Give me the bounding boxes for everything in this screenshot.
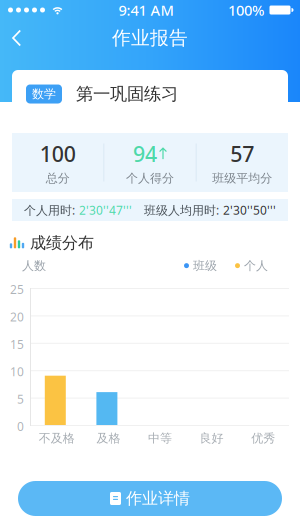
- staticText: 5: [17, 391, 24, 407]
- staticText: 作业报告: [112, 26, 188, 49]
- staticText: 20: [10, 309, 24, 325]
- staticText: 良好: [200, 431, 224, 446]
- staticText: 作业详情: [126, 489, 190, 508]
- staticText: 成绩分布: [30, 233, 94, 253]
- staticText: 94: [133, 139, 157, 168]
- staticText: 2'30''50''': [223, 202, 276, 218]
- staticText: 2'30''47''': [79, 202, 132, 218]
- staticText: 个人: [244, 258, 268, 273]
- staticText: 0: [17, 418, 24, 434]
- staticText: 第一巩固练习: [76, 83, 178, 105]
- staticText: 数学: [32, 87, 56, 101]
- button[interactable]: 作业详情: [18, 481, 282, 516]
- staticText: 班级: [193, 258, 217, 273]
- staticText: 优秀: [251, 431, 275, 446]
- staticText: 班级人均用时:: [144, 202, 219, 218]
- staticText: 个人用时:: [24, 202, 75, 218]
- staticText: 不及格: [39, 431, 75, 446]
- staticText: 100%: [228, 0, 264, 20]
- staticText: 9:41 AM: [118, 0, 173, 20]
- staticText: 15: [10, 336, 24, 352]
- staticText: 中等: [148, 431, 172, 446]
- staticText: 班级平均分: [212, 171, 272, 185]
- staticText: 个人得分: [126, 171, 174, 185]
- staticText: 及格: [96, 431, 120, 446]
- staticText: 57: [230, 139, 254, 168]
- staticText: 人数: [22, 258, 46, 273]
- button[interactable]: Back: [0, 20, 38, 55]
- staticText: 25: [10, 281, 24, 297]
- staticText: 总分: [46, 171, 70, 185]
- staticText: 10: [10, 364, 24, 380]
- staticText: 100: [40, 139, 76, 168]
